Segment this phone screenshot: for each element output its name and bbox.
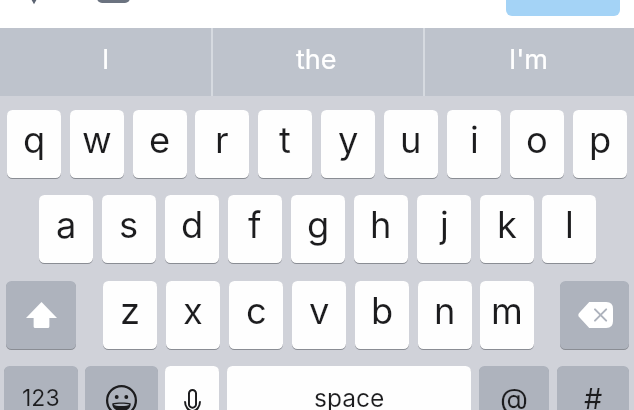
staticText: u: [400, 118, 422, 162]
staticText: y: [338, 118, 359, 162]
button[interactable]: g: [291, 195, 345, 263]
staticText: o: [526, 118, 548, 162]
button[interactable]: Dictate: [165, 366, 219, 410]
button[interactable]: w: [70, 110, 124, 178]
staticText: space: [314, 383, 385, 410]
button[interactable]: q: [7, 110, 61, 178]
button[interactable]: I'm: [423, 28, 634, 96]
staticText: m: [491, 289, 523, 333]
button[interactable]: h: [354, 195, 408, 263]
staticText: l: [565, 203, 574, 247]
button[interactable]: Shift: [6, 281, 76, 349]
button[interactable]: l: [542, 195, 596, 263]
button[interactable]: c: [229, 281, 283, 349]
button[interactable]: i: [447, 110, 501, 178]
button[interactable]: I: [0, 28, 211, 96]
button[interactable]: s: [102, 195, 156, 263]
staticText: h: [370, 203, 392, 247]
button[interactable]: d: [165, 195, 219, 263]
staticText: j: [440, 203, 449, 247]
staticText: z: [120, 289, 141, 333]
button[interactable]: m: [480, 281, 534, 349]
staticText: v: [309, 289, 330, 333]
staticText: e: [149, 118, 171, 162]
staticText: @: [500, 381, 529, 410]
button[interactable]: o: [510, 110, 564, 178]
button[interactable]: r: [195, 110, 249, 178]
staticText: d: [181, 203, 204, 247]
staticText: r: [215, 118, 229, 162]
button[interactable]: the: [211, 28, 422, 96]
button[interactable]: @: [479, 366, 549, 410]
staticText: q: [23, 118, 46, 162]
button[interactable]: Collapse: [25, 0, 43, 2]
button[interactable]: t: [258, 110, 312, 178]
button[interactable]: a: [39, 195, 93, 263]
button[interactable]: e: [133, 110, 187, 178]
staticText: the: [296, 43, 337, 76]
staticText: a: [56, 203, 77, 247]
staticText: k: [497, 203, 517, 247]
button[interactable]: x: [166, 281, 220, 349]
staticText: I'm: [509, 43, 548, 76]
button[interactable]: Backspace: [560, 281, 629, 349]
staticText: I: [102, 43, 110, 76]
staticText: b: [371, 289, 394, 333]
button[interactable]: u: [384, 110, 438, 178]
button[interactable]: j: [417, 195, 471, 263]
button[interactable]: z: [103, 281, 157, 349]
staticText: i: [470, 118, 479, 162]
button[interactable]: v: [292, 281, 346, 349]
button[interactable]: Emoji: [85, 366, 158, 410]
button[interactable]: #: [557, 366, 629, 410]
staticText: f: [248, 203, 262, 247]
staticText: x: [183, 289, 203, 333]
staticText: s: [119, 203, 139, 247]
button[interactable]: 123: [4, 366, 78, 410]
button[interactable]: f: [228, 195, 282, 263]
staticText: p: [589, 118, 612, 162]
button[interactable]: Send: [506, 0, 620, 16]
staticText: t: [279, 118, 291, 162]
staticText: g: [307, 203, 330, 247]
staticText: c: [246, 289, 267, 333]
staticText: n: [434, 289, 456, 333]
staticText: w: [82, 118, 112, 162]
button[interactable]: n: [418, 281, 472, 349]
button[interactable]: k: [480, 195, 534, 263]
button[interactable]: Drag handle: [97, 0, 130, 3]
staticText: #: [584, 381, 603, 410]
button[interactable]: p: [573, 110, 627, 178]
button[interactable]: y: [321, 110, 375, 178]
staticText: 123: [22, 384, 60, 410]
button[interactable]: space: [227, 366, 471, 410]
button[interactable]: b: [355, 281, 409, 349]
